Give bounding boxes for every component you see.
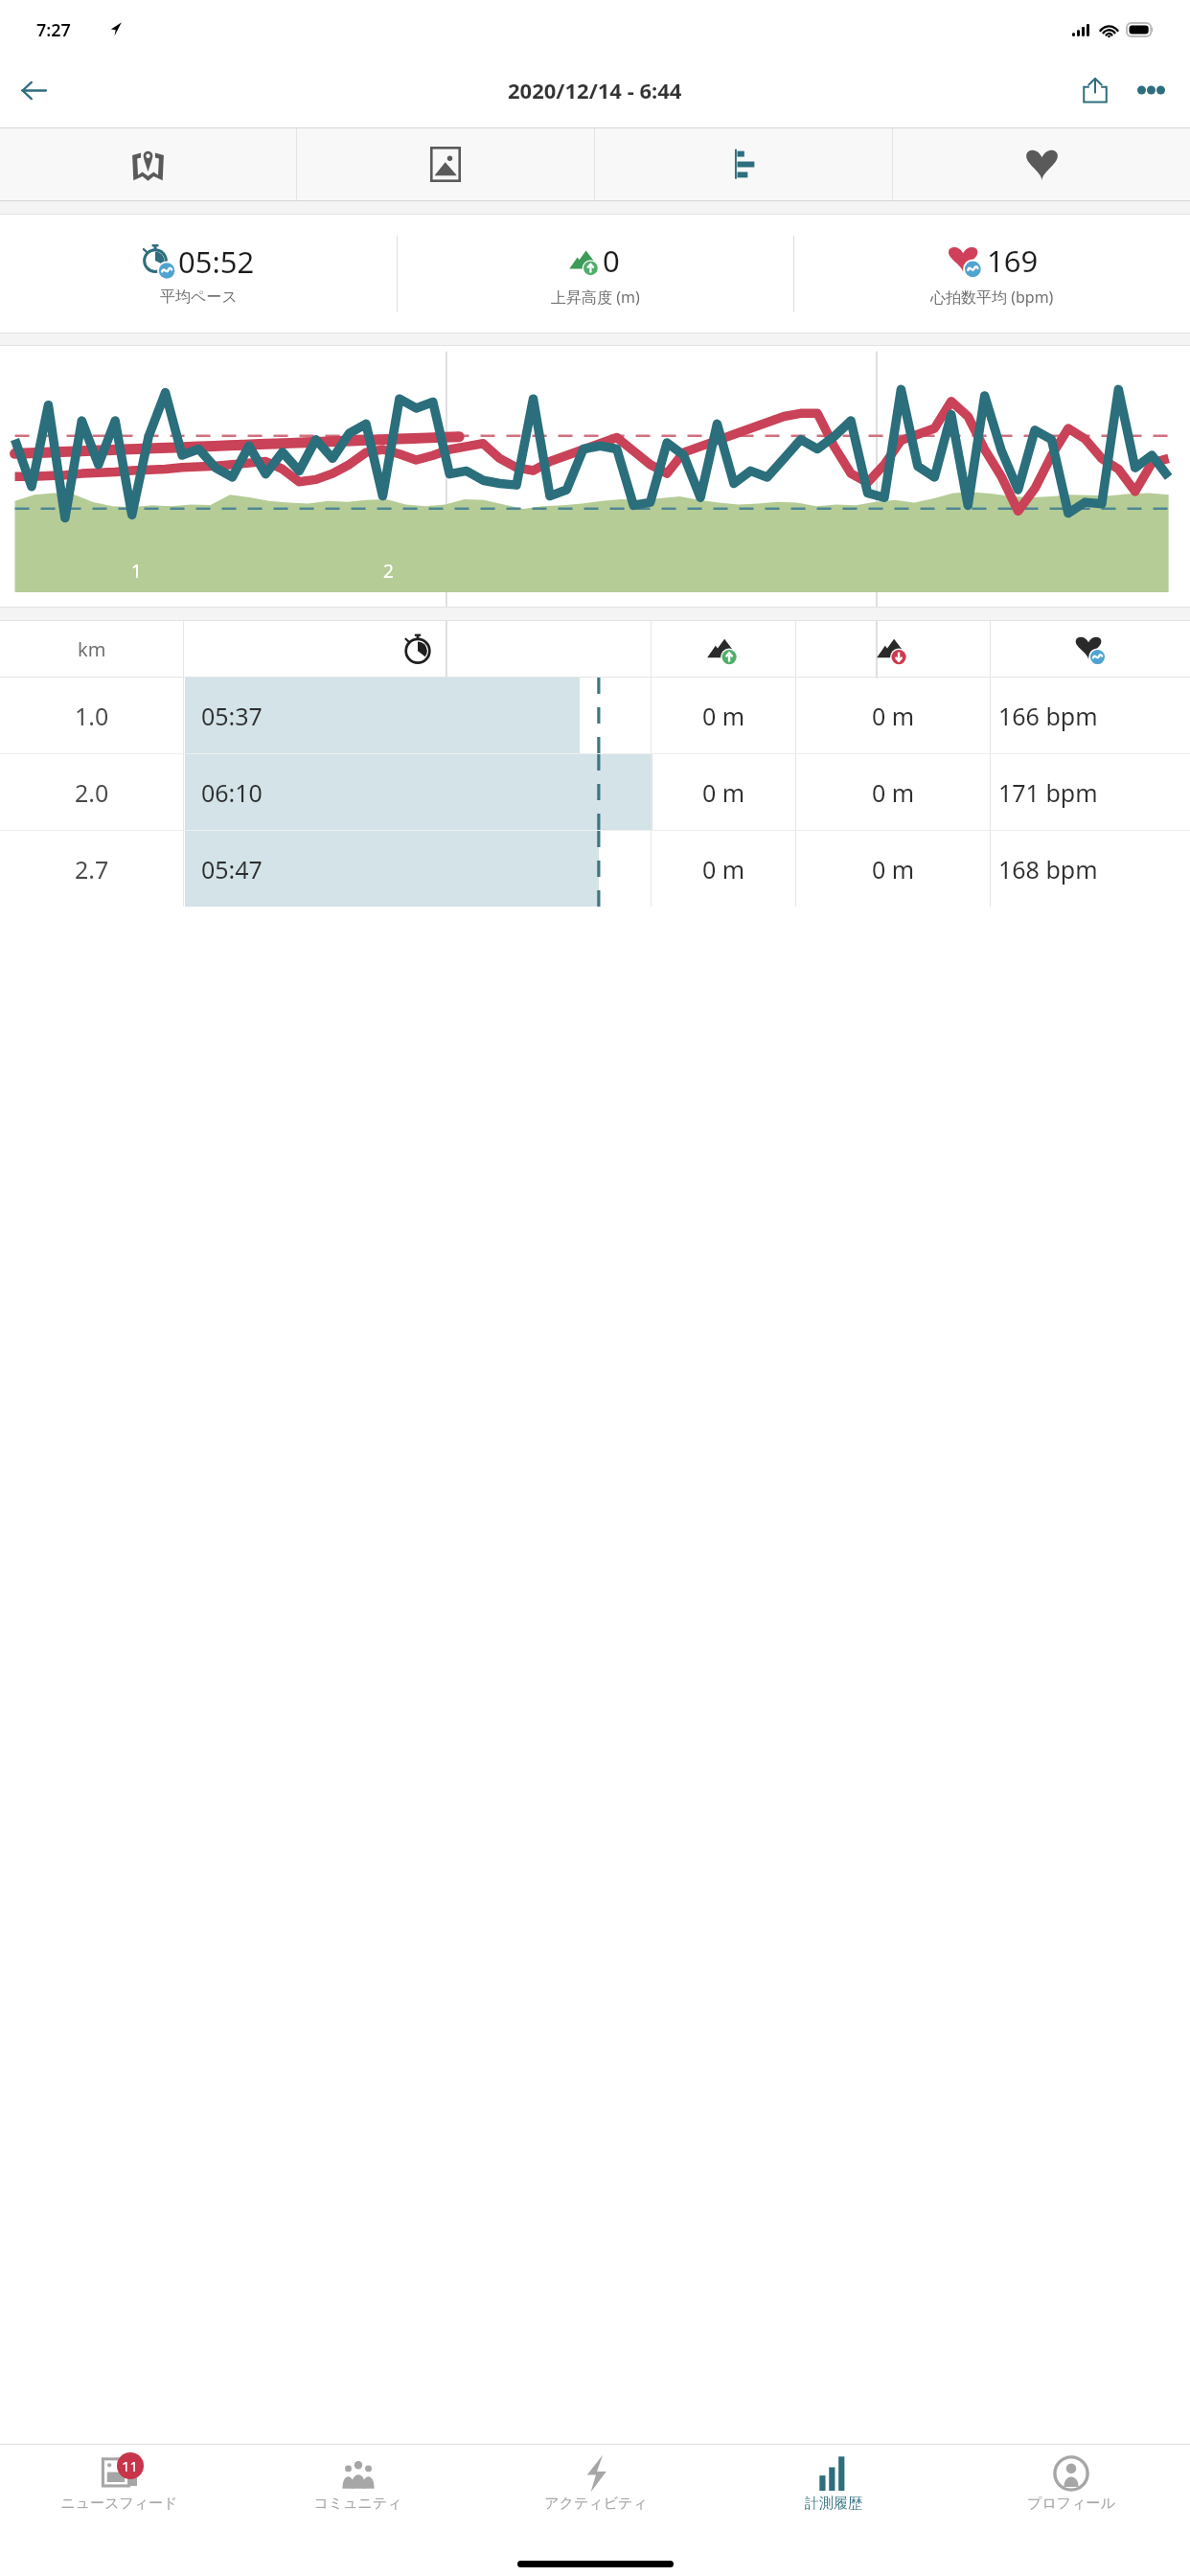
button[interactable]: 計測履歴 [715, 2445, 952, 2536]
staticText: 05:47 [201, 853, 263, 885]
staticText: 06:10 [201, 776, 263, 809]
staticText: 1.0 [75, 700, 109, 732]
staticText: 7:27 [36, 18, 71, 42]
button[interactable]: Share [1067, 62, 1123, 118]
button[interactable]: 169 [794, 215, 1190, 333]
staticText: 168 bpm [998, 853, 1098, 885]
staticText: 2.0 [75, 776, 109, 809]
staticText: プロフィール [1027, 2495, 1115, 2513]
button[interactable]: Back [6, 62, 61, 118]
staticText: 0 m [872, 700, 915, 732]
button[interactable]: Heart rate [893, 128, 1190, 200]
button[interactable]: 11 [0, 2445, 239, 2536]
staticText: 0 m [872, 853, 915, 885]
staticText: 0 m [872, 776, 915, 809]
button[interactable]: 1 [0, 346, 1190, 607]
button[interactable]: 2.7 [0, 831, 1190, 907]
staticText: 0 m [702, 700, 745, 732]
button[interactable]: More options [1123, 62, 1179, 118]
staticText: コミュニティ [313, 2495, 402, 2513]
staticText: km [78, 636, 106, 662]
staticText: アクティビティ [544, 2495, 648, 2513]
staticText: 2 [383, 559, 394, 584]
staticText: ニュースフィード [60, 2495, 178, 2513]
staticText: 0 [603, 241, 620, 281]
staticText: 166 bpm [998, 700, 1098, 732]
staticText: 11 [122, 2456, 139, 2475]
staticText: 計測履歴 [805, 2495, 862, 2513]
staticText: 0 m [702, 853, 745, 885]
button[interactable]: 1.0 [0, 678, 1190, 753]
staticText: 2020/12/14 - 6:44 [508, 76, 682, 104]
staticText: 05:52 [178, 241, 255, 282]
staticText: 2.7 [75, 853, 109, 885]
staticText: 0 m [702, 776, 745, 809]
staticText: 心拍数平均 (bpm) [930, 287, 1054, 308]
button[interactable]: Charts [595, 128, 892, 200]
staticText: 平均ペース [160, 287, 238, 307]
button[interactable]: 0 [398, 215, 793, 333]
button[interactable]: Map [0, 128, 296, 200]
button[interactable]: 05:52 [0, 215, 397, 333]
staticText: 05:37 [201, 700, 263, 732]
button[interactable]: コミュニティ [239, 2445, 477, 2536]
button[interactable]: プロフィール [952, 2445, 1190, 2536]
button[interactable]: 2.0 [0, 754, 1190, 830]
staticText: 169 [987, 241, 1039, 281]
staticText: 1 [131, 559, 142, 584]
button[interactable]: アクティビティ [477, 2445, 715, 2536]
staticText: 171 bpm [998, 776, 1098, 809]
staticText: 上昇高度 (m) [551, 287, 640, 308]
button[interactable]: Photos [297, 128, 594, 200]
